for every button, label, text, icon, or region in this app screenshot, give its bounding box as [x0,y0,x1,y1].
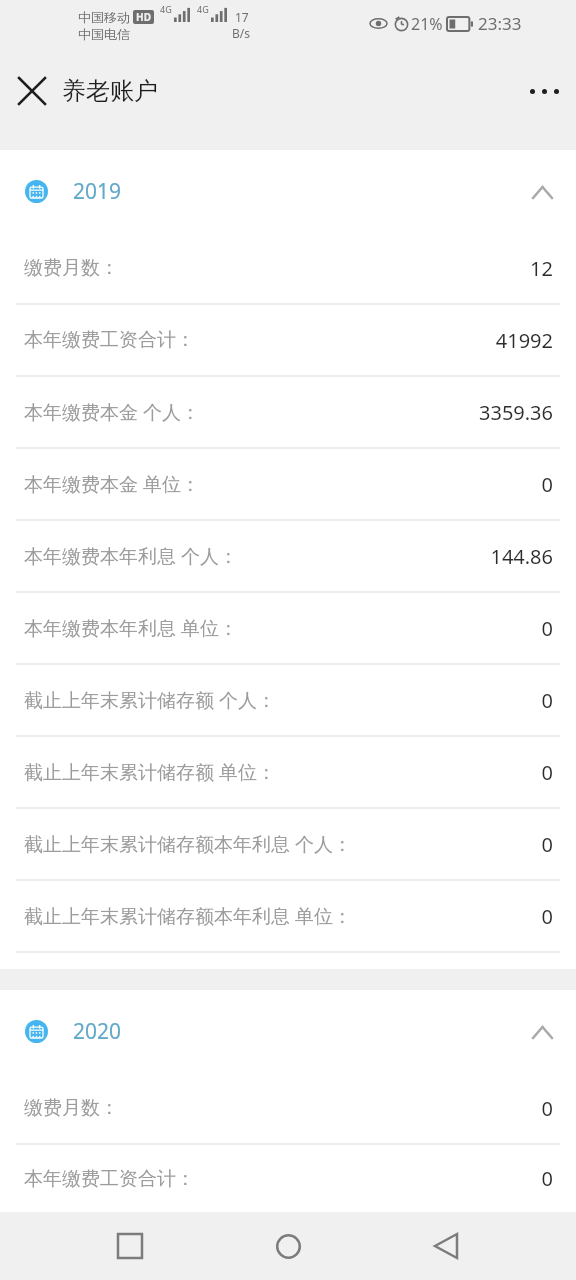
button[interactable]: 本年缴费工资合计： [0,305,576,375]
button[interactable]: Recent apps [102,1218,158,1274]
button[interactable]: 本年缴费本年利息 个人： [0,521,576,591]
staticText: 截止上年末累计储存额 个人： [24,687,276,713]
staticText: 0 [541,615,553,642]
staticText: 144.86 [490,543,553,570]
staticText: HD [136,10,151,24]
button[interactable]: 本年缴费工资合计： [0,1145,576,1212]
staticText: 4G [197,3,209,15]
button[interactable]: Back [418,1218,474,1274]
staticText: 0 [541,759,553,786]
staticText: 21% [411,13,443,35]
staticText: 2019 [73,177,122,206]
other: Collapse [522,172,562,212]
button[interactable]: 本年缴费本金 个人： [0,377,576,447]
staticText: 17 [235,9,249,25]
staticText: 中国电信 [78,26,130,42]
staticText: 0 [541,903,553,930]
button[interactable]: 本年缴费本金 单位： [0,449,576,519]
staticText: 本年缴费工资合计： [24,328,195,352]
other: Collapse [522,1012,562,1052]
button[interactable]: 截止上年末累计储存额本年利息 个人： [0,809,576,879]
button[interactable]: 本年缴费本年利息 单位： [0,593,576,663]
button[interactable]: 截止上年末累计储存额本年利息 单位： [0,881,576,951]
staticText: 本年缴费本金 个人： [24,399,200,425]
staticText: 0 [541,1165,553,1192]
staticText: 本年缴费本金 单位： [24,471,200,497]
staticText: 0 [541,831,553,858]
staticText: 0 [541,1095,553,1122]
staticText: 缴费月数： [24,256,119,280]
staticText: 截止上年末累计储存额本年利息 单位： [24,903,352,929]
button[interactable]: Home [260,1218,316,1274]
staticText: 2020 [73,1017,122,1046]
staticText: 4G [160,3,172,15]
staticText: 本年缴费本年利息 单位： [24,615,238,641]
staticText: 本年缴费工资合计： [24,1167,195,1191]
button[interactable]: Close [10,69,54,113]
staticText: 截止上年末累计储存额 单位： [24,759,276,785]
staticText: 41992 [495,327,553,354]
staticText: 12 [530,255,553,282]
button[interactable]: 截止上年末累计储存额 个人： [0,665,576,735]
button[interactable]: 截止上年末累计储存额 单位： [0,737,576,807]
staticText: 截止上年末累计储存额本年利息 个人： [24,831,352,857]
staticText: 3359.36 [479,399,553,426]
button[interactable]: 2019 [0,150,576,233]
button[interactable]: More options [520,67,568,115]
button[interactable]: 缴费月数： [0,1073,576,1143]
staticText: 中国移动 [78,9,130,25]
staticText: 23:33 [478,12,522,35]
staticText: 养老账户 [62,76,158,106]
button[interactable]: 2020 [0,990,576,1073]
button[interactable]: 缴费月数： [0,233,576,303]
staticText: 0 [541,687,553,714]
staticText: 缴费月数： [24,1096,119,1120]
staticText: 本年缴费本年利息 个人： [24,543,238,569]
staticText: 0 [541,471,553,498]
staticText: B/s [232,25,251,41]
